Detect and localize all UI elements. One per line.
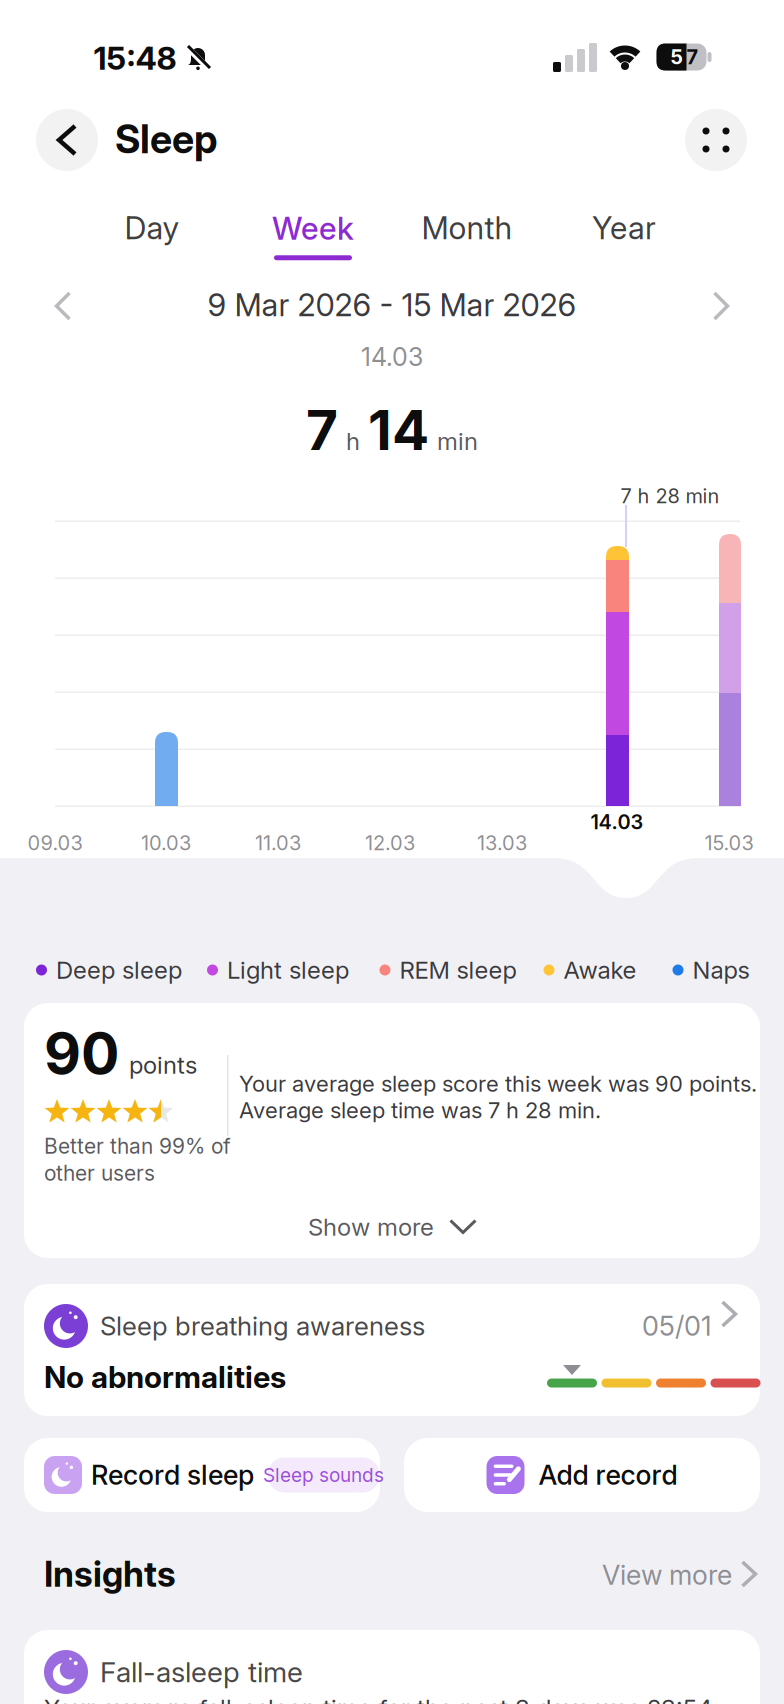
staticText: points bbox=[129, 1050, 197, 1079]
button[interactable]: More options bbox=[685, 109, 747, 171]
staticText: 7 bbox=[306, 397, 338, 463]
button[interactable]: Record sleep bbox=[24, 1438, 380, 1512]
button[interactable]: Previous week bbox=[53, 293, 73, 319]
staticText: other users bbox=[44, 1160, 155, 1186]
button[interactable]: Month bbox=[402, 198, 532, 258]
staticText: 14 bbox=[368, 397, 429, 463]
staticText: Year bbox=[592, 209, 656, 247]
staticText: min bbox=[437, 427, 478, 456]
staticText: 14.03 bbox=[590, 810, 643, 834]
button[interactable]: Back bbox=[36, 109, 98, 171]
staticText: 90 bbox=[44, 1018, 119, 1087]
staticText: Light sleep bbox=[227, 955, 349, 984]
button[interactable]: Year bbox=[559, 198, 689, 258]
staticText: 05/01 bbox=[642, 1310, 712, 1342]
button[interactable]: Show more bbox=[308, 1212, 476, 1241]
staticText: 7 h 28 min bbox=[620, 484, 719, 508]
staticText: Fall-asleep time bbox=[100, 1655, 303, 1689]
button[interactable]: Week bbox=[272, 210, 354, 260]
staticText: Month bbox=[421, 209, 512, 247]
button[interactable]: Next week bbox=[711, 293, 731, 319]
staticText: View more bbox=[602, 1559, 732, 1591]
staticText: 5 bbox=[670, 45, 682, 69]
staticText: 14.03 bbox=[361, 342, 423, 372]
staticText: Sleep sounds bbox=[263, 1463, 384, 1486]
staticText: 13.03 bbox=[477, 831, 527, 855]
staticText: Record sleep bbox=[91, 1459, 254, 1491]
staticText: Show more bbox=[308, 1212, 434, 1241]
staticText: Naps bbox=[692, 955, 749, 984]
button[interactable]: Add record bbox=[404, 1438, 760, 1512]
button[interactable]: View more bbox=[602, 1559, 756, 1591]
staticText: Week bbox=[272, 210, 354, 247]
staticText: Sleep breathing awareness bbox=[100, 1310, 425, 1342]
staticText: 09.03 bbox=[27, 831, 82, 855]
button[interactable]: Day bbox=[87, 198, 217, 258]
staticText: Awake bbox=[563, 955, 636, 984]
staticText: Insights bbox=[44, 1553, 176, 1595]
staticText: Average sleep time was 7 h 28 min. bbox=[239, 1097, 601, 1124]
staticText: 11.03 bbox=[255, 831, 301, 855]
staticText: 12.03 bbox=[365, 831, 415, 855]
staticText: 15.03 bbox=[704, 831, 753, 855]
staticText: Sleep bbox=[115, 115, 217, 163]
staticText: 9 Mar 2026 - 15 Mar 2026 bbox=[207, 286, 576, 324]
staticText: REM sleep bbox=[399, 955, 516, 984]
staticText: 10.03 bbox=[141, 831, 191, 855]
staticText: h bbox=[346, 427, 360, 456]
staticText: Better than 99% of bbox=[44, 1133, 231, 1159]
staticText: 7 bbox=[686, 45, 698, 69]
staticText: Day bbox=[124, 209, 179, 247]
staticText: Your average fall-asleep time for the pa… bbox=[44, 1693, 719, 1704]
staticText: 15:48 bbox=[93, 39, 176, 77]
staticText: Your average sleep score this week was 9… bbox=[239, 1070, 757, 1097]
staticText: Add record bbox=[538, 1459, 677, 1491]
button[interactable]: Sleep breathing awareness bbox=[24, 1284, 760, 1416]
staticText: No abnormalities bbox=[44, 1359, 286, 1395]
staticText: Deep sleep bbox=[56, 955, 182, 984]
